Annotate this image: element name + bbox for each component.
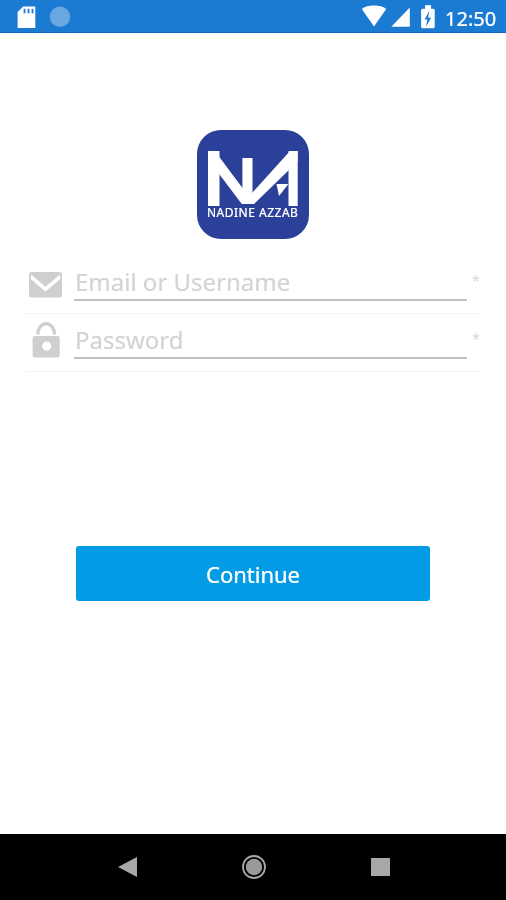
staticText: Password — [75, 323, 184, 356]
staticText: Continue — [206, 559, 301, 589]
button[interactable]: Password — [0, 323, 506, 373]
staticText: * — [472, 329, 480, 348]
button[interactable]: Continue — [76, 546, 430, 601]
staticText: * — [472, 271, 480, 290]
staticText: Email or Username — [75, 265, 291, 298]
button[interactable]: Home — [233, 847, 274, 887]
button[interactable]: Recent apps — [360, 847, 401, 887]
button[interactable]: Back — [107, 847, 148, 887]
staticText: NADINE AZZAB — [207, 204, 299, 220]
button[interactable]: Email or Username — [0, 265, 506, 315]
staticText: 12:50 — [445, 5, 497, 32]
